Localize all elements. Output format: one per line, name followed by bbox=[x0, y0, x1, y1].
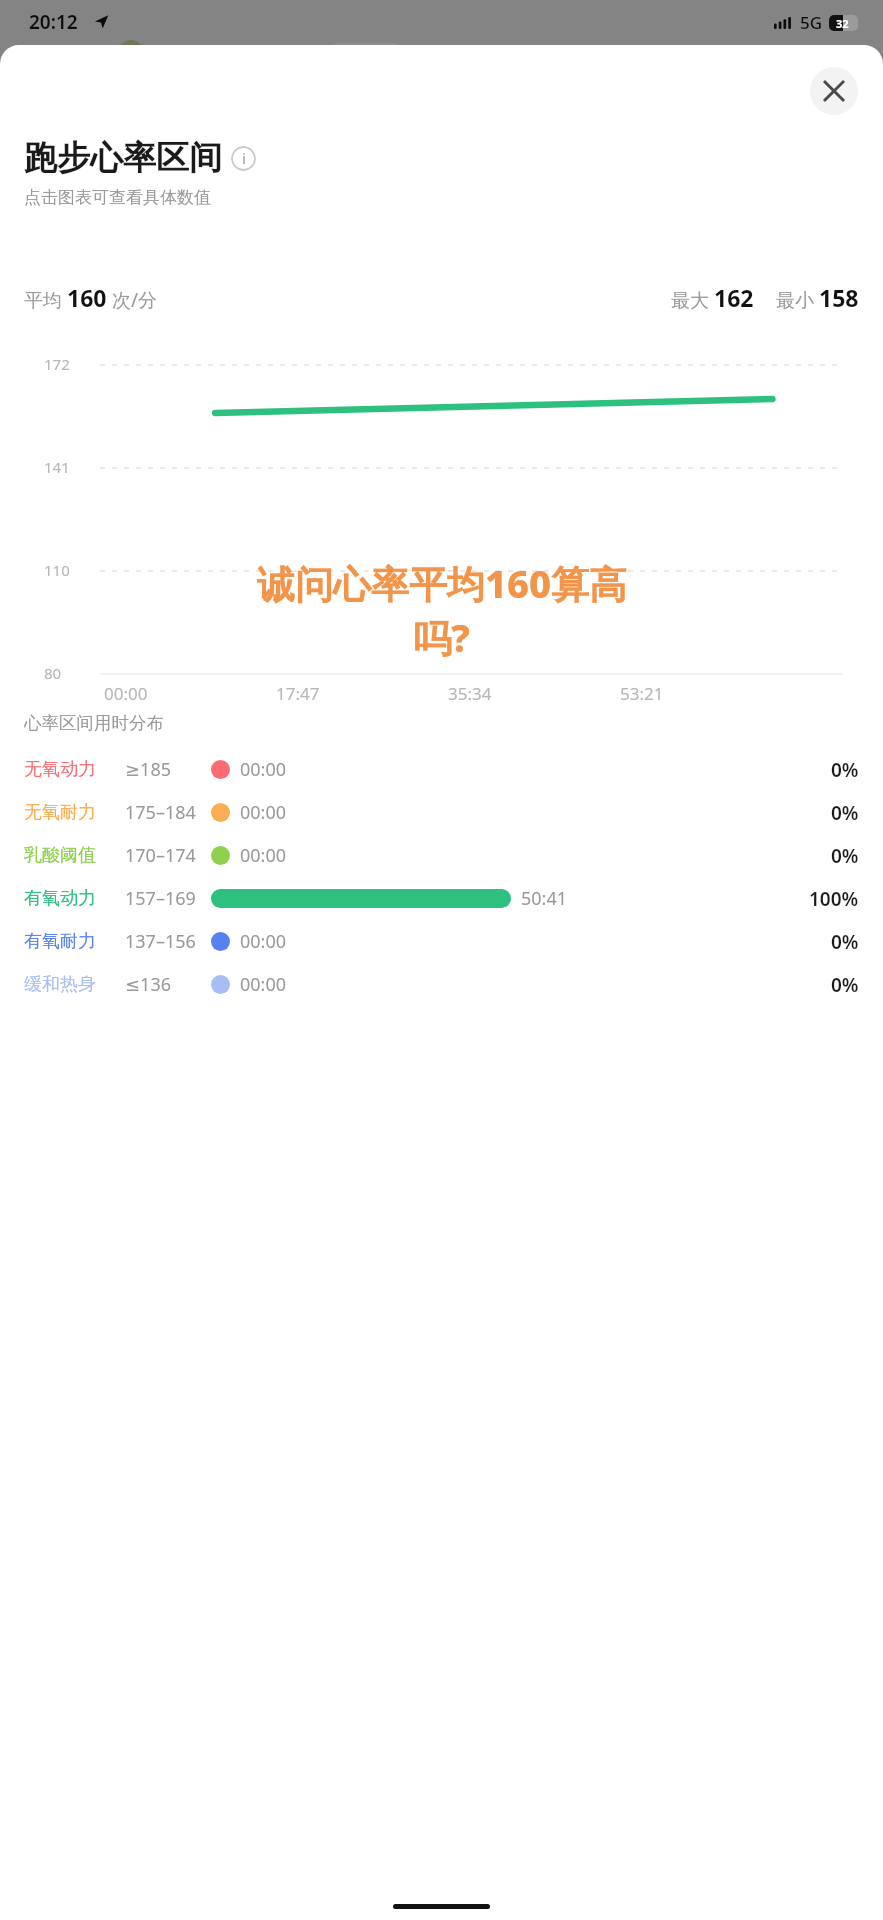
staticText: 吗? bbox=[413, 611, 470, 663]
staticText: 137–156 bbox=[125, 929, 211, 954]
staticText: 170–174 bbox=[125, 843, 211, 868]
button[interactable]: 有氧耐力 bbox=[0, 920, 883, 963]
staticText: 缓和热身 bbox=[24, 973, 120, 996]
staticText: 0% bbox=[831, 800, 859, 826]
staticText: 157–169 bbox=[125, 886, 211, 911]
staticText: 158 bbox=[819, 282, 859, 313]
button[interactable]: Close bbox=[810, 67, 858, 115]
staticText: 110 bbox=[44, 560, 70, 580]
staticText: 80 bbox=[44, 663, 62, 683]
staticText: 17:47 bbox=[276, 682, 320, 705]
staticText: 32 bbox=[836, 16, 849, 31]
button[interactable]: 缓和热身 bbox=[0, 963, 883, 1006]
staticText: 00:00 bbox=[104, 682, 148, 705]
staticText: 有氧动力 bbox=[24, 887, 120, 910]
staticText: 162 bbox=[714, 282, 754, 313]
staticText: 0% bbox=[831, 929, 859, 955]
staticText: 最大 bbox=[671, 287, 714, 313]
staticText: 次/分 bbox=[107, 287, 158, 313]
staticText: 跑步心率区间 bbox=[24, 137, 222, 179]
staticText: 100% bbox=[809, 886, 859, 912]
staticText: 有氧耐力 bbox=[24, 930, 120, 953]
staticText: 诚问心率平均160算高 bbox=[257, 557, 627, 609]
staticText: 点击图表可查看具体数值 bbox=[24, 187, 211, 208]
button[interactable]: 有氧动力 bbox=[0, 877, 883, 920]
staticText: 20:12 bbox=[29, 9, 78, 35]
staticText: 5G bbox=[800, 11, 823, 34]
staticText: i bbox=[242, 149, 246, 168]
button[interactable]: Info bbox=[231, 146, 256, 171]
staticText: 无氧耐力 bbox=[24, 801, 120, 824]
staticText: 00:00 bbox=[240, 843, 287, 868]
staticText: 00:00 bbox=[240, 929, 287, 954]
staticText: 35:34 bbox=[448, 682, 492, 705]
staticText: 平均 bbox=[24, 287, 67, 313]
staticText: 172 bbox=[44, 354, 70, 374]
staticText: 00:00 bbox=[240, 757, 287, 782]
staticText: 00:00 bbox=[240, 800, 287, 825]
staticText: ≤136 bbox=[125, 972, 211, 997]
staticText: 0% bbox=[831, 843, 859, 869]
staticText: 160 bbox=[67, 282, 107, 313]
staticText: 心率区间用时分布 bbox=[24, 712, 164, 734]
staticText: 乳酸阈值 bbox=[24, 844, 120, 867]
staticText: 141 bbox=[44, 457, 70, 477]
staticText: 无氧动力 bbox=[24, 758, 120, 781]
button[interactable]: 无氧耐力 bbox=[0, 791, 883, 834]
staticText: 175–184 bbox=[125, 800, 211, 825]
button[interactable]: 乳酸阈值 bbox=[0, 834, 883, 877]
staticText: 50:41 bbox=[521, 886, 568, 911]
button[interactable]: 无氧动力 bbox=[0, 748, 883, 791]
staticText: 0% bbox=[831, 757, 859, 783]
staticText: 00:00 bbox=[240, 972, 287, 997]
staticText: 53:21 bbox=[620, 682, 664, 705]
staticText: 0% bbox=[831, 972, 859, 998]
staticText: 最小 bbox=[776, 287, 819, 313]
staticText: ≥185 bbox=[125, 757, 211, 782]
